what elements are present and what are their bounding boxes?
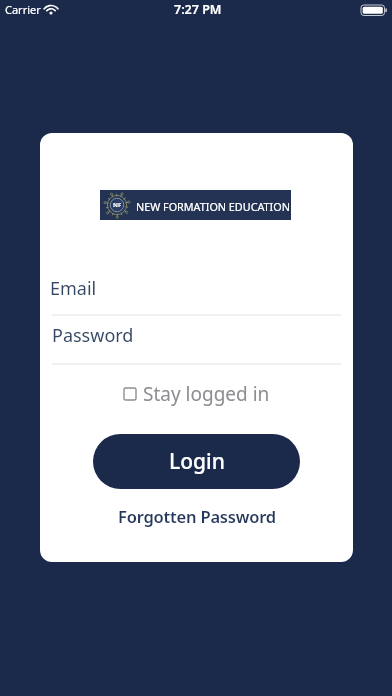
staticText: NEW FORMATION EDUCATION <box>136 199 290 214</box>
button[interactable]: Forgotten Password <box>118 505 276 527</box>
button[interactable]: Stay logged in <box>124 381 270 407</box>
staticText: Email <box>50 276 97 301</box>
staticText: Carrier <box>5 2 41 17</box>
button[interactable]: Email <box>50 271 341 307</box>
button[interactable]: Login <box>93 434 300 489</box>
staticText: Login <box>169 447 225 476</box>
staticText: Forgotten Password <box>118 505 276 527</box>
staticText: 7:27 PM <box>174 1 222 18</box>
button[interactable]: Password <box>50 319 341 355</box>
staticText: Password <box>52 323 134 348</box>
staticText: NF <box>113 201 122 209</box>
staticText: Stay logged in <box>143 381 270 407</box>
